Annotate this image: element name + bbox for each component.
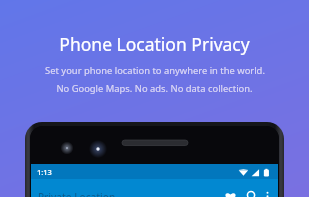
staticText: 1:13 xyxy=(37,167,52,177)
button[interactable]: Favorites xyxy=(224,190,237,197)
button[interactable]: More options xyxy=(265,190,270,197)
staticText: No Google Maps. No ads. No data collecti… xyxy=(56,82,253,95)
staticText: Set your phone location to anywhere in t… xyxy=(45,64,265,77)
button[interactable]: Private Location xyxy=(38,190,116,197)
button[interactable]: Search xyxy=(246,190,258,197)
staticText: Phone Location Privacy xyxy=(59,32,250,56)
